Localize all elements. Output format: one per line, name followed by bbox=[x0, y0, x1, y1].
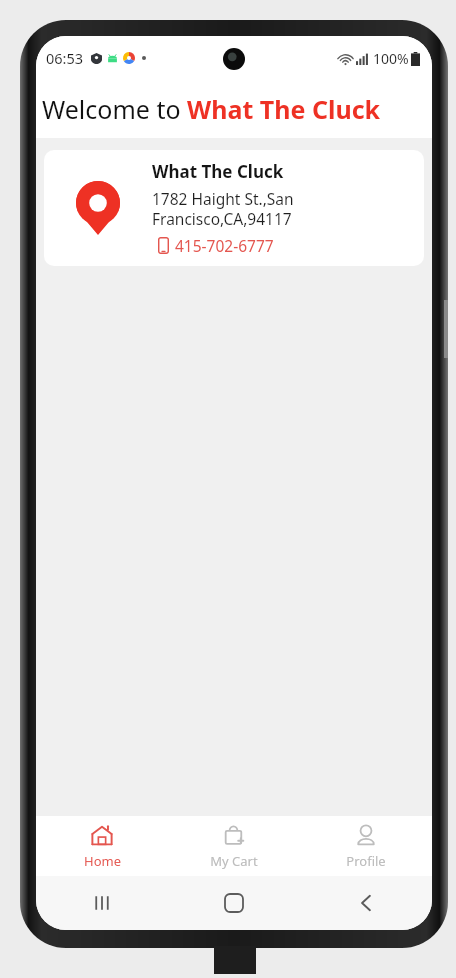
staticText: What The Cluck bbox=[152, 160, 284, 183]
button[interactable]: Location bbox=[44, 150, 424, 266]
staticText: 06:53 bbox=[46, 48, 84, 68]
button[interactable]: Back bbox=[300, 876, 432, 930]
staticText: Home bbox=[84, 852, 121, 870]
staticText: My Cart bbox=[210, 852, 258, 870]
staticText: 415-702-6777 bbox=[175, 235, 274, 256]
button[interactable]: 415-702-6777 bbox=[158, 235, 274, 256]
button[interactable]: Home bbox=[36, 816, 168, 876]
staticText: Welcome to What The Cluck bbox=[42, 92, 381, 126]
button[interactable]: Home bbox=[168, 876, 300, 930]
staticText: Profile bbox=[346, 852, 386, 870]
button[interactable]: Recents bbox=[36, 876, 168, 930]
button[interactable]: Profile bbox=[300, 816, 432, 876]
staticText: 100% bbox=[373, 49, 409, 68]
button[interactable]: My Cart bbox=[168, 816, 300, 876]
staticText: 1782 Haight St.,San Francisco,CA,94117 bbox=[152, 188, 294, 229]
other: Location bbox=[76, 181, 120, 235]
